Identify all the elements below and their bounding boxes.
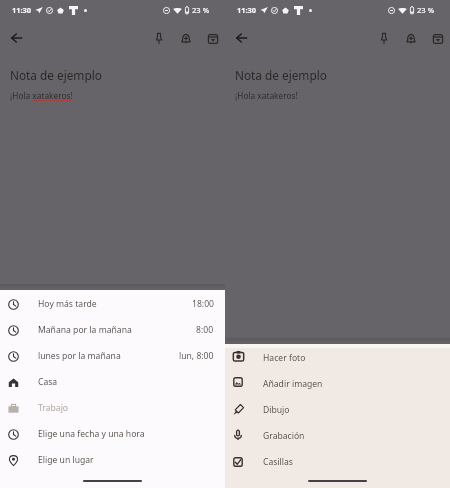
button[interactable]: Archivar — [426, 27, 449, 50]
staticText: 23 % — [417, 5, 435, 15]
staticText: Elige un lugar — [38, 454, 94, 466]
staticText: 11:30 — [237, 5, 256, 15]
button[interactable]: Dibujo — [225, 397, 450, 423]
staticText: Mañana por la mañana — [38, 324, 132, 336]
button[interactable]: Hoy más tarde — [0, 291, 225, 317]
staticText: Elige una fecha y una hora — [38, 428, 145, 440]
button[interactable]: Archivar — [201, 27, 224, 50]
button[interactable]: Recordatorio — [174, 27, 197, 50]
button[interactable]: Mañana por la mañana — [0, 317, 225, 343]
staticText: lun, 8:00 — [179, 350, 214, 362]
staticText: 23 % — [192, 5, 210, 15]
staticText: ¡Hola xatakeros! — [235, 90, 298, 101]
button[interactable]: Fijar nota — [372, 27, 395, 50]
button[interactable]: Back — [4, 26, 28, 50]
staticText: Hacer foto — [263, 352, 306, 364]
button[interactable]: Grabación — [225, 423, 450, 449]
button[interactable]: Fijar nota — [147, 27, 170, 50]
staticText: lunes por la mañana — [38, 350, 121, 362]
button[interactable]: Elige un lugar — [0, 447, 225, 473]
staticText: Hoy más tarde — [38, 298, 97, 310]
staticText: Grabación — [263, 430, 305, 442]
button[interactable]: Elige una fecha y una hora — [0, 421, 225, 447]
staticText: Nota de ejemplo — [10, 67, 102, 83]
staticText: Casa — [38, 376, 58, 388]
staticText: ¡Hola xatakeros! — [10, 90, 73, 101]
button[interactable]: Hacer foto — [225, 345, 450, 371]
staticText: Dibujo — [263, 404, 290, 416]
staticText: Añadir imagen — [263, 378, 323, 390]
button[interactable]: Back — [229, 26, 253, 50]
button[interactable]: Recordatorio — [399, 27, 422, 50]
staticText: Trabajo — [38, 402, 69, 414]
staticText: Nota de ejemplo — [235, 67, 327, 83]
staticText: 11:30 — [12, 5, 31, 15]
button[interactable]: Añadir imagen — [225, 371, 450, 397]
button[interactable]: Trabajo — [0, 395, 225, 421]
staticText: Casillas — [263, 456, 293, 468]
button[interactable]: Casa — [0, 369, 225, 395]
button[interactable]: Casillas — [225, 449, 450, 475]
staticText: 8:00 — [196, 324, 214, 336]
button[interactable]: lunes por la mañana — [0, 343, 225, 369]
staticText: 18:00 — [192, 298, 214, 310]
